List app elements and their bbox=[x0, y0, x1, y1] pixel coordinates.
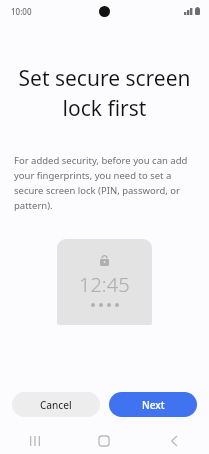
button[interactable]: Recent apps bbox=[0, 428, 69, 454]
staticText: 12:45 bbox=[79, 271, 130, 298]
button[interactable]: Next bbox=[109, 392, 197, 417]
button[interactable]: Back bbox=[139, 428, 209, 454]
staticText: For added security, before you can add y… bbox=[14, 154, 195, 212]
staticText: Cancel bbox=[40, 398, 72, 412]
staticText: Next bbox=[142, 398, 165, 412]
staticText: 10:00 bbox=[11, 6, 32, 17]
staticText: Set secure screen lock first bbox=[14, 64, 195, 122]
button[interactable]: Home bbox=[69, 428, 139, 454]
button[interactable]: Cancel bbox=[12, 392, 100, 417]
